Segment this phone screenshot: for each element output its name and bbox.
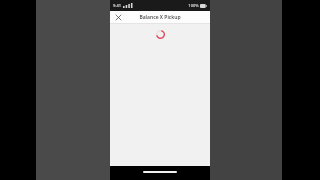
- staticText: Balance X Pickup: [139, 14, 181, 21]
- staticText: 100%: [188, 3, 199, 8]
- button[interactable]: Close: [114, 13, 123, 22]
- staticText: 9:41: [113, 3, 121, 8]
